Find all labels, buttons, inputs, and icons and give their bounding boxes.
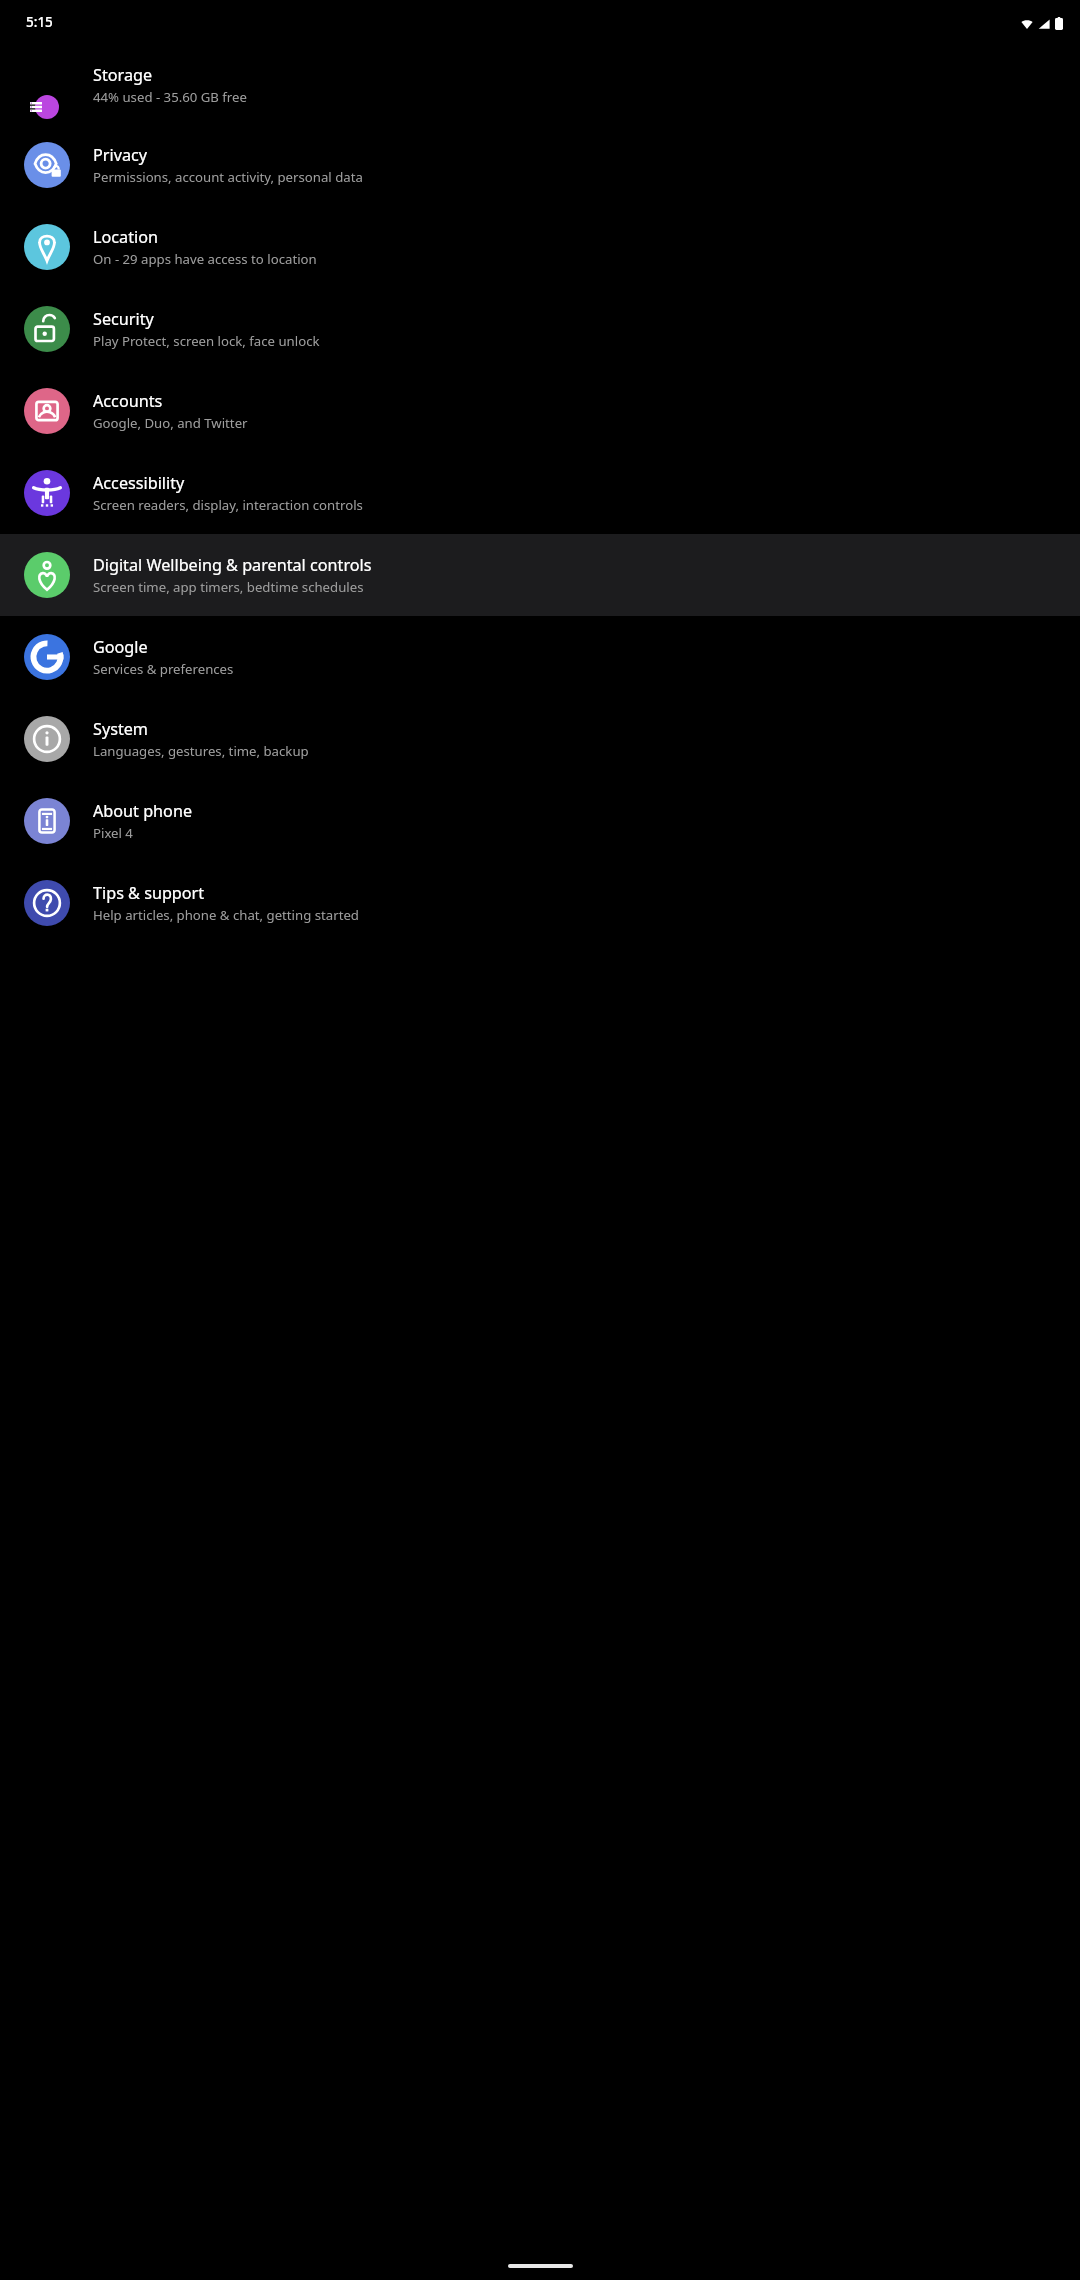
staticText: 5:15 xyxy=(26,13,53,31)
staticText: On - 29 apps have access to location xyxy=(93,250,317,268)
staticText: Storage xyxy=(93,64,153,86)
button[interactable]: Accounts xyxy=(0,370,1080,452)
staticText: Google xyxy=(93,636,148,658)
staticText: Digital Wellbeing & parental controls xyxy=(93,554,372,576)
staticText: Permissions, account activity, personal … xyxy=(93,168,363,186)
staticText: 44% used - 35.60 GB free xyxy=(93,88,247,106)
staticText: Languages, gestures, time, backup xyxy=(93,742,309,760)
button[interactable]: About phone xyxy=(0,780,1080,862)
button[interactable]: System xyxy=(0,698,1080,780)
staticText: Services & preferences xyxy=(93,660,234,678)
staticText: Privacy xyxy=(93,144,147,166)
button[interactable]: Digital Wellbeing & parental controls xyxy=(0,534,1080,616)
staticText: Screen time, app timers, bedtime schedul… xyxy=(93,578,364,596)
button[interactable]: Security xyxy=(0,288,1080,370)
button[interactable]: Accessibility xyxy=(0,452,1080,534)
staticText: About phone xyxy=(93,800,193,822)
staticText: Screen readers, display, interaction con… xyxy=(93,496,363,514)
button[interactable]: Location xyxy=(0,206,1080,288)
staticText: Google, Duo, and Twitter xyxy=(93,414,248,432)
staticText: Location xyxy=(93,226,158,248)
button[interactable]: Tips & support xyxy=(0,862,1080,944)
staticText: Play Protect, screen lock, face unlock xyxy=(93,332,320,350)
staticText: Security xyxy=(93,308,154,330)
staticText: Accessibility xyxy=(93,472,185,494)
button[interactable]: Google xyxy=(0,616,1080,698)
staticText: Accounts xyxy=(93,390,163,412)
staticText: Pixel 4 xyxy=(93,824,133,842)
button[interactable]: Storage xyxy=(0,46,1080,124)
staticText: System xyxy=(93,718,149,740)
staticText: Help articles, phone & chat, getting sta… xyxy=(93,906,359,924)
staticText: Tips & support xyxy=(93,882,205,904)
button[interactable]: Privacy xyxy=(0,124,1080,206)
